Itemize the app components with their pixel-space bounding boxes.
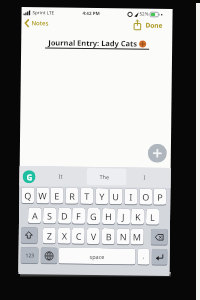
button[interactable]: 123 <box>20 247 39 264</box>
button[interactable]: space <box>58 248 136 265</box>
button[interactable]: It <box>58 173 63 180</box>
staticText: Journal Entry: Lady Cats <box>48 37 137 48</box>
staticText: G <box>26 171 33 182</box>
button[interactable]: P <box>153 189 166 206</box>
button[interactable]: R <box>65 188 78 205</box>
button[interactable] <box>133 19 141 31</box>
staticText: Sprint LTE <box>32 9 55 15</box>
button[interactable]: O <box>139 188 152 206</box>
button[interactable]: H <box>102 208 115 225</box>
staticText: H <box>105 210 112 222</box>
staticText: M <box>133 230 142 243</box>
button[interactable]: . <box>137 248 150 266</box>
button[interactable]: M <box>131 228 144 246</box>
staticText: 52% <box>139 10 149 17</box>
button[interactable]: K <box>131 208 144 226</box>
staticText: E <box>54 189 60 202</box>
staticText: 123 <box>25 252 35 259</box>
staticText: Y <box>99 190 105 202</box>
staticText: A <box>32 209 38 221</box>
staticText: 4:42 PM <box>82 10 101 16</box>
button[interactable]: Q <box>21 187 34 204</box>
staticText: O <box>142 191 150 203</box>
button[interactable]: Y <box>95 188 108 205</box>
button[interactable]: D <box>58 207 71 225</box>
button[interactable]: Notes <box>24 19 48 27</box>
button[interactable]: S <box>43 207 56 225</box>
staticText: X <box>62 230 68 242</box>
button[interactable]: I <box>124 188 137 206</box>
staticText: . <box>142 252 145 262</box>
staticText: U <box>112 190 119 202</box>
button[interactable]: J <box>117 208 130 225</box>
button[interactable]: W <box>36 187 49 204</box>
button[interactable]: L <box>146 209 159 226</box>
staticText: space <box>89 253 105 260</box>
button[interactable]: C <box>72 228 85 245</box>
staticText: K <box>135 210 141 223</box>
staticText: R <box>69 190 75 202</box>
staticText: Z <box>47 229 53 241</box>
staticText: T <box>84 190 90 202</box>
button[interactable]: E <box>50 187 63 205</box>
staticText: C <box>76 230 82 242</box>
button[interactable] <box>151 249 168 266</box>
button[interactable]: T <box>80 188 93 205</box>
button[interactable] <box>148 144 167 163</box>
button[interactable]: G <box>22 170 36 183</box>
button[interactable]: V <box>87 228 100 245</box>
staticText: Q <box>24 189 32 201</box>
staticText: D <box>61 210 68 222</box>
staticText: N <box>120 230 127 242</box>
staticText: Notes <box>31 19 48 27</box>
button[interactable]: F <box>72 208 85 225</box>
staticText: I <box>129 190 133 202</box>
staticText: L <box>150 211 155 223</box>
button[interactable] <box>40 247 58 264</box>
button[interactable]: Done <box>145 21 162 30</box>
button[interactable]: B <box>102 228 115 245</box>
staticText: B <box>106 230 112 242</box>
button[interactable]: The <box>99 173 110 180</box>
button[interactable]: A <box>28 207 41 224</box>
button[interactable] <box>21 227 38 244</box>
button[interactable]: I <box>143 174 146 181</box>
staticText: V <box>91 230 97 242</box>
staticText: F <box>76 210 81 222</box>
staticText: P <box>157 191 163 203</box>
button[interactable]: G <box>87 208 100 225</box>
staticText: S <box>47 209 52 221</box>
button[interactable]: X <box>58 227 71 245</box>
button[interactable] <box>151 229 168 246</box>
staticText: G <box>90 210 97 222</box>
button[interactable]: Z <box>43 227 56 245</box>
button[interactable]: N <box>117 228 130 245</box>
staticText: W <box>38 189 47 201</box>
staticText: J <box>122 210 125 222</box>
button[interactable]: U <box>109 188 122 205</box>
